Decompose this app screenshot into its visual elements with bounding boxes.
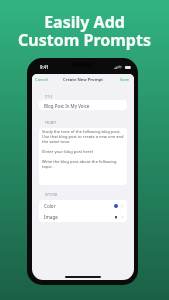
staticText: Study the tone of the following blog pos… xyxy=(42,129,124,169)
staticText: Save xyxy=(120,77,130,83)
staticText: Cancel xyxy=(35,77,49,83)
staticText: Easily Add Custom Prompts xyxy=(18,11,151,51)
staticText: OPTIONS xyxy=(45,193,58,197)
button[interactable]: Cancel xyxy=(32,74,53,86)
button[interactable]: Save xyxy=(116,74,134,86)
staticText: 9:41 xyxy=(40,64,49,70)
staticText: PROMPT xyxy=(45,121,57,125)
button[interactable]: Color xyxy=(39,200,127,211)
staticText: TITLE xyxy=(45,95,53,99)
button[interactable]: Image xyxy=(39,211,127,222)
staticText: Blog Post In My Voice xyxy=(44,103,90,109)
staticText: Color xyxy=(44,203,56,209)
staticText: Create New Prompt xyxy=(63,77,104,83)
staticText: Image xyxy=(44,214,58,220)
